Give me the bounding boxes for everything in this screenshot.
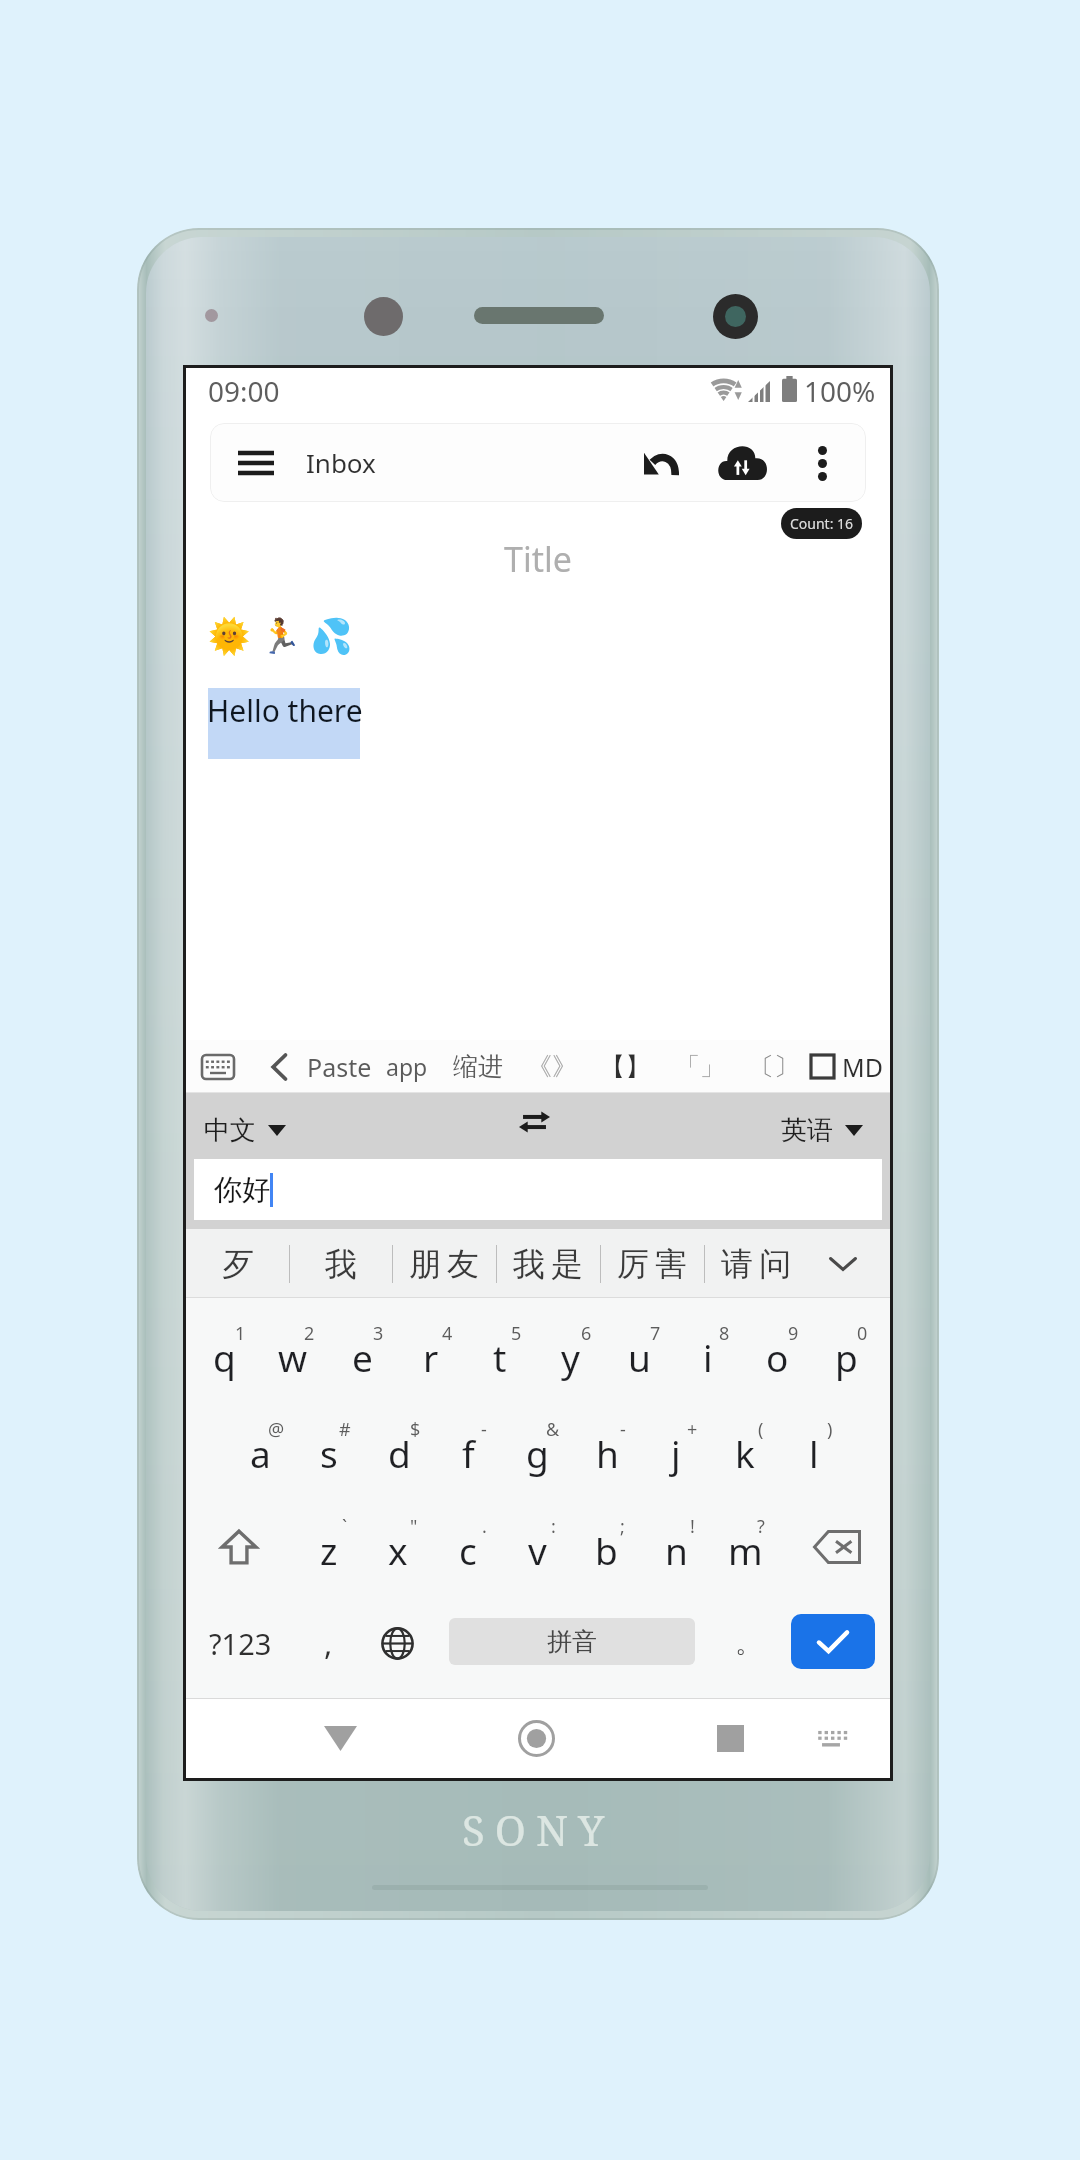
staticText: 拼音: [547, 1626, 597, 1657]
staticText: $: [410, 1417, 421, 1442]
staticText: ,: [324, 1622, 333, 1664]
staticText: ?123: [209, 1624, 272, 1663]
button[interactable]: m: [711, 1505, 779, 1589]
button[interactable]: u: [605, 1312, 673, 1396]
button[interactable]: Hide keyboard: [786, 1698, 876, 1778]
button[interactable]: v: [503, 1505, 571, 1589]
button[interactable]: g: [503, 1408, 571, 1492]
button[interactable]: 请问: [706, 1229, 806, 1298]
button[interactable]: h: [573, 1408, 641, 1492]
staticText: .: [482, 1514, 487, 1539]
staticText: y: [561, 1332, 580, 1382]
button[interactable]: k: [711, 1408, 779, 1492]
staticText: 6: [581, 1321, 592, 1346]
staticText: Count: 16: [790, 514, 854, 533]
button[interactable]: 厉害: [602, 1229, 702, 1298]
button[interactable]: 歹: [188, 1229, 288, 1298]
button[interactable]: d: [365, 1408, 433, 1492]
staticText: 4: [442, 1321, 453, 1346]
staticText: 厉害: [614, 1244, 690, 1284]
button[interactable]: b: [572, 1505, 640, 1589]
button[interactable]: Toggle checkbox: [804, 1040, 840, 1093]
staticText: &: [546, 1417, 560, 1442]
button[interactable]: Paste: [299, 1040, 379, 1093]
staticText: i: [703, 1332, 713, 1382]
button[interactable]: z: [295, 1505, 363, 1589]
staticText: m: [728, 1525, 763, 1575]
staticText: 歹: [222, 1244, 254, 1284]
button[interactable]: j: [642, 1408, 710, 1492]
button[interactable]: Backspace: [800, 1505, 874, 1589]
staticText: MD: [842, 1050, 883, 1084]
button[interactable]: Change keyboard language: [364, 1601, 430, 1685]
staticText: b: [595, 1525, 618, 1575]
button[interactable]: 缩进: [438, 1040, 518, 1093]
button[interactable]: p: [812, 1312, 880, 1396]
button[interactable]: ,: [300, 1601, 356, 1685]
staticText: ;: [620, 1514, 625, 1539]
button[interactable]: Expand suggestions: [806, 1229, 880, 1298]
staticText: 1: [235, 1321, 246, 1346]
button[interactable]: ?123: [186, 1601, 294, 1685]
staticText: -: [481, 1417, 487, 1442]
button[interactable]: Enter: [791, 1614, 875, 1669]
button[interactable]: Shift: [206, 1505, 272, 1589]
button[interactable]: 《》: [514, 1040, 590, 1093]
staticText: Paste: [307, 1050, 372, 1084]
button[interactable]: 「」: [662, 1040, 738, 1093]
button[interactable]: 。: [716, 1601, 780, 1685]
button[interactable]: t: [466, 1312, 534, 1396]
staticText: 【】: [600, 1051, 650, 1082]
button[interactable]: 〔〕: [736, 1040, 812, 1093]
button[interactable]: r: [397, 1312, 465, 1396]
button[interactable]: Recents: [685, 1698, 775, 1778]
button[interactable]: y: [536, 1312, 604, 1396]
button[interactable]: x: [364, 1505, 432, 1589]
staticText: 。: [735, 1626, 762, 1660]
staticText: 你好: [214, 1172, 270, 1207]
button[interactable]: Show keyboard: [190, 1040, 246, 1093]
staticText: (: [758, 1417, 764, 1442]
staticText: k: [735, 1428, 755, 1478]
button[interactable]: Sync: [716, 437, 768, 489]
button[interactable]: l: [780, 1408, 848, 1492]
button[interactable]: Previous: [256, 1040, 302, 1093]
button[interactable]: Swap languages: [508, 1099, 560, 1145]
button[interactable]: w: [259, 1312, 327, 1396]
staticText: a: [250, 1428, 271, 1478]
button[interactable]: 朋友: [394, 1229, 494, 1298]
button[interactable]: 英语: [781, 1107, 863, 1153]
staticText: +: [687, 1417, 698, 1442]
staticText: t: [493, 1332, 507, 1382]
button[interactable]: f: [434, 1408, 502, 1492]
button[interactable]: 我是: [498, 1229, 598, 1298]
staticText: s: [320, 1428, 338, 1478]
button[interactable]: MD: [839, 1040, 885, 1093]
button[interactable]: s: [295, 1408, 363, 1492]
button[interactable]: Back: [285, 1698, 395, 1778]
staticText: ": [410, 1514, 418, 1539]
button[interactable]: Count: 16: [781, 508, 862, 539]
staticText: l: [809, 1428, 819, 1478]
button[interactable]: n: [642, 1505, 710, 1589]
button[interactable]: Undo: [636, 437, 688, 489]
button[interactable]: 【】: [587, 1040, 663, 1093]
staticText: u: [628, 1332, 651, 1382]
button[interactable]: 中文: [204, 1107, 286, 1153]
staticText: 2: [304, 1321, 315, 1346]
staticText: SONY: [462, 1801, 615, 1858]
button[interactable]: Home: [481, 1698, 591, 1778]
button[interactable]: 拼音: [449, 1618, 695, 1665]
button[interactable]: 我: [291, 1229, 391, 1298]
button[interactable]: i: [674, 1312, 742, 1396]
button[interactable]: e: [328, 1312, 396, 1396]
button[interactable]: More options: [796, 437, 848, 489]
button[interactable]: Open navigation drawer: [230, 437, 282, 489]
staticText: c: [459, 1525, 477, 1575]
button[interactable]: q: [190, 1312, 258, 1396]
button[interactable]: app: [371, 1040, 443, 1093]
button[interactable]: c: [434, 1505, 502, 1589]
staticText: `: [342, 1514, 348, 1539]
button[interactable]: o: [743, 1312, 811, 1396]
button[interactable]: a: [226, 1408, 294, 1492]
